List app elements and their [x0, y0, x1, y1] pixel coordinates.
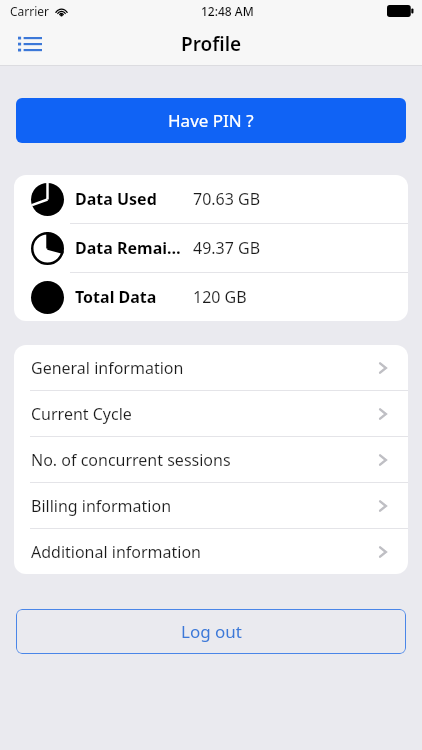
staticText: 120 GB — [193, 286, 247, 308]
button[interactable]: Additional information — [14, 529, 408, 574]
button[interactable]: Data Used — [14, 175, 408, 223]
button[interactable]: Menu — [8, 22, 52, 66]
staticText: 70.63 GB — [193, 188, 261, 210]
button[interactable]: Have PIN ? — [16, 98, 406, 143]
staticText: 49.37 GB — [193, 237, 261, 259]
staticText: Log out — [181, 620, 242, 643]
button[interactable]: Log out — [16, 609, 406, 654]
button[interactable]: Total Data — [14, 273, 408, 321]
button[interactable]: General information — [14, 345, 408, 390]
staticText: Billing information — [31, 495, 172, 517]
button[interactable]: Data Remai… — [14, 224, 408, 272]
staticText: Have PIN ? — [168, 109, 254, 132]
staticText: Profile — [181, 31, 242, 57]
button[interactable]: Current Cycle — [14, 391, 408, 436]
button[interactable]: No. of concurrent sessions — [14, 437, 408, 482]
staticText: Carrier — [10, 3, 50, 19]
staticText: Total Data — [75, 286, 183, 308]
staticText: Current Cycle — [31, 403, 132, 425]
staticText: 12:48 AM — [201, 3, 254, 19]
staticText: Data Remai… — [75, 237, 183, 259]
staticText: No. of concurrent sessions — [31, 449, 231, 471]
staticText: Additional information — [31, 541, 201, 563]
staticText: General information — [31, 357, 184, 379]
button[interactable]: Billing information — [14, 483, 408, 528]
staticText: Data Used — [75, 188, 183, 210]
